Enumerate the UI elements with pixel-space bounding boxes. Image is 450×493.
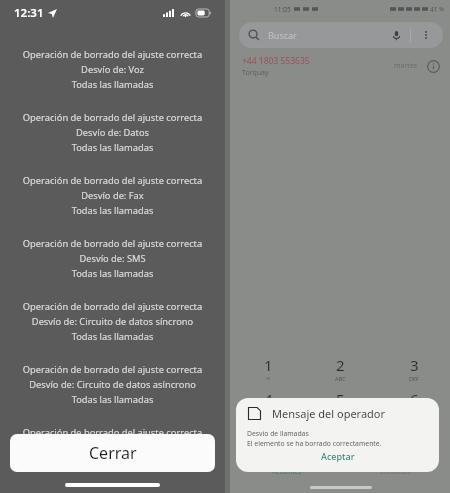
staticText: Operación de borrado del ajuste correcta bbox=[8, 237, 217, 250]
button[interactable]: Detalles de la llamada bbox=[426, 59, 440, 73]
staticText: PQRS bbox=[261, 443, 276, 450]
staticText: +44 1803 553635 bbox=[242, 55, 310, 67]
button[interactable]: 1 bbox=[232, 351, 304, 385]
staticText: Contactos bbox=[380, 467, 411, 476]
staticText: 8 bbox=[336, 423, 345, 443]
button[interactable]: Aceptar bbox=[309, 448, 367, 464]
staticText: 7 bbox=[264, 423, 273, 443]
staticText: martes bbox=[394, 61, 418, 71]
staticText: Operación de borrado del ajuste correcta bbox=[8, 426, 217, 439]
staticText: Todas las llamadas bbox=[8, 330, 217, 343]
staticText: 4 bbox=[264, 389, 273, 409]
button[interactable]: 2 bbox=[304, 351, 377, 385]
button[interactable]: +44 1803 553635 bbox=[242, 52, 440, 80]
staticText: Aceptar bbox=[321, 450, 355, 462]
staticText: 3 bbox=[410, 355, 419, 375]
staticText: % bbox=[439, 5, 444, 13]
staticText: Desvío de: Acceso de paquetes bbox=[8, 441, 217, 454]
button[interactable]: Contactos bbox=[341, 461, 450, 481]
staticText: 41 bbox=[430, 5, 438, 14]
staticText: Desvío de llamadas bbox=[247, 429, 309, 438]
staticText: ∞ bbox=[266, 375, 271, 381]
staticText: 11:05 bbox=[274, 5, 291, 14]
button[interactable]: Más opciones bbox=[418, 27, 434, 43]
staticText: Operación de borrado del ajuste correcta bbox=[8, 48, 217, 61]
button[interactable]: 7 bbox=[232, 419, 304, 453]
staticText: Todas las llamadas bbox=[8, 78, 217, 91]
staticText: Buscar bbox=[268, 29, 297, 41]
button[interactable]: 8 bbox=[304, 419, 377, 453]
staticText: DEF bbox=[409, 375, 419, 382]
staticText: Desvío de: Datos bbox=[8, 126, 217, 139]
staticText: 6 bbox=[410, 389, 419, 409]
staticText: Desvío de: Voz bbox=[8, 63, 217, 76]
staticText: JKL bbox=[337, 409, 345, 416]
staticText: Desvío de: Circuito de datos asíncrono bbox=[8, 378, 217, 391]
staticText: Operación de borrado del ajuste correcta bbox=[8, 300, 217, 313]
button[interactable]: Buscar bbox=[239, 22, 443, 48]
button[interactable]: Búsqueda por voz bbox=[388, 27, 404, 43]
staticText: ABC bbox=[335, 375, 346, 382]
button[interactable]: 6 bbox=[377, 385, 450, 419]
staticText: Desvío de: Circuito de datos síncrono bbox=[8, 315, 217, 328]
staticText: Operación de borrado del ajuste correcta bbox=[8, 111, 217, 124]
button[interactable]: 5 bbox=[304, 385, 377, 419]
staticText: TUV bbox=[335, 443, 346, 450]
staticText: Mensaje del operador bbox=[272, 406, 386, 421]
staticText: Todas las llamadas bbox=[8, 393, 217, 406]
staticText: El elemento se ha borrado correctamente. bbox=[247, 439, 382, 448]
staticText: Torquay bbox=[242, 68, 269, 78]
staticText: Recientes bbox=[272, 467, 302, 476]
staticText: Desvío de: SMS bbox=[8, 252, 217, 265]
staticText: Operación de borrado del ajuste correcta bbox=[8, 174, 217, 187]
staticText: Desvío de: Fax bbox=[8, 189, 217, 202]
staticText: Todas las llamadas bbox=[8, 141, 217, 154]
staticText: Todas las llamadas bbox=[8, 204, 217, 217]
staticText: 5 bbox=[336, 389, 345, 409]
staticText: 1 bbox=[264, 355, 273, 375]
button[interactable]: Recientes bbox=[232, 461, 341, 481]
button[interactable]: 9 bbox=[377, 419, 450, 453]
staticText: 2 bbox=[336, 355, 345, 375]
staticText: Todas las llamadas bbox=[8, 267, 217, 280]
staticText: 12:31 bbox=[14, 5, 44, 21]
button[interactable]: Cerrar bbox=[10, 434, 215, 472]
staticText: Operación de borrado del ajuste correcta bbox=[8, 363, 217, 376]
button[interactable]: 3 bbox=[377, 351, 450, 385]
button[interactable]: 4 bbox=[232, 385, 304, 419]
staticText: Cerrar bbox=[89, 442, 137, 464]
